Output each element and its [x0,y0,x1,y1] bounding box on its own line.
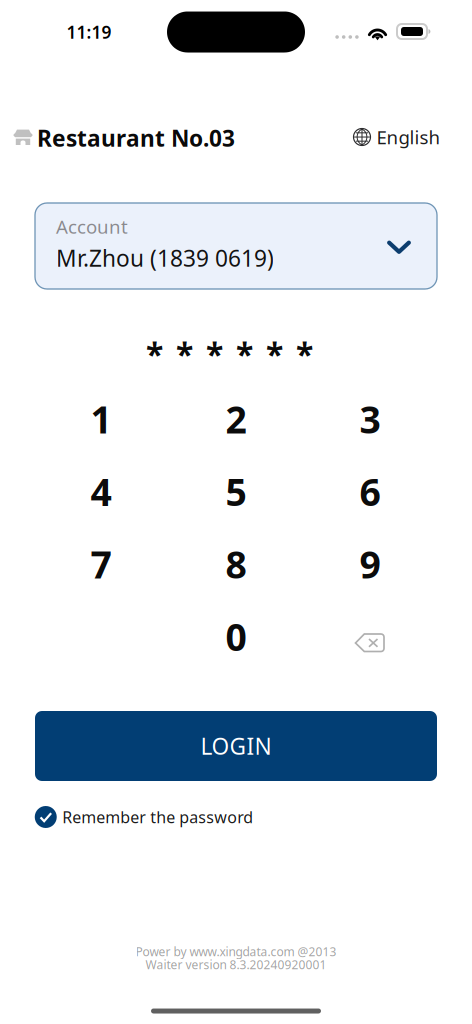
staticText: * [176,333,193,375]
button[interactable]: 8 [176,528,296,600]
staticText: 2 [225,394,246,444]
staticText: 1 [90,394,111,444]
button[interactable]: 4 [41,455,161,527]
button[interactable]: 0 [176,600,296,672]
staticText: LOGIN [200,731,271,761]
button[interactable]: 9 [310,528,430,600]
button[interactable]: 1 [41,383,161,455]
staticText: 3 [359,394,380,444]
staticText: 7 [90,539,111,589]
staticText: Mr.Zhou (1839 0619) [56,243,274,273]
staticText: Restaurant No.03 [37,123,235,153]
staticText: Waiter version 8.3.20240920001 [145,956,326,972]
staticText: 8 [225,539,246,589]
staticText: * [296,333,313,375]
button[interactable]: Delete [310,607,430,679]
staticText: 9 [359,539,380,589]
staticText: * [146,333,163,375]
staticText: 5 [225,467,246,516]
staticText: 0 [225,612,246,661]
staticText: 11:19 [66,20,111,43]
staticText: 6 [359,467,380,516]
staticText: * [236,333,253,375]
button[interactable]: LOGIN [35,711,437,781]
staticText: Account [56,214,128,239]
button[interactable]: 7 [41,528,161,600]
staticText: Remember the password [62,806,253,828]
staticText: * [266,333,283,375]
staticText: English [376,125,440,149]
button[interactable]: 6 [310,455,430,527]
staticText: 4 [90,467,111,516]
button[interactable]: 3 [310,383,430,455]
button[interactable]: Account [35,203,437,289]
staticText: Power by www.xingdata.com @2013 [135,943,336,959]
staticText: * [206,333,223,375]
button[interactable]: Remember the password [35,806,253,828]
button[interactable]: 5 [176,455,296,527]
button[interactable]: English [353,125,440,149]
button[interactable]: 2 [176,383,296,455]
